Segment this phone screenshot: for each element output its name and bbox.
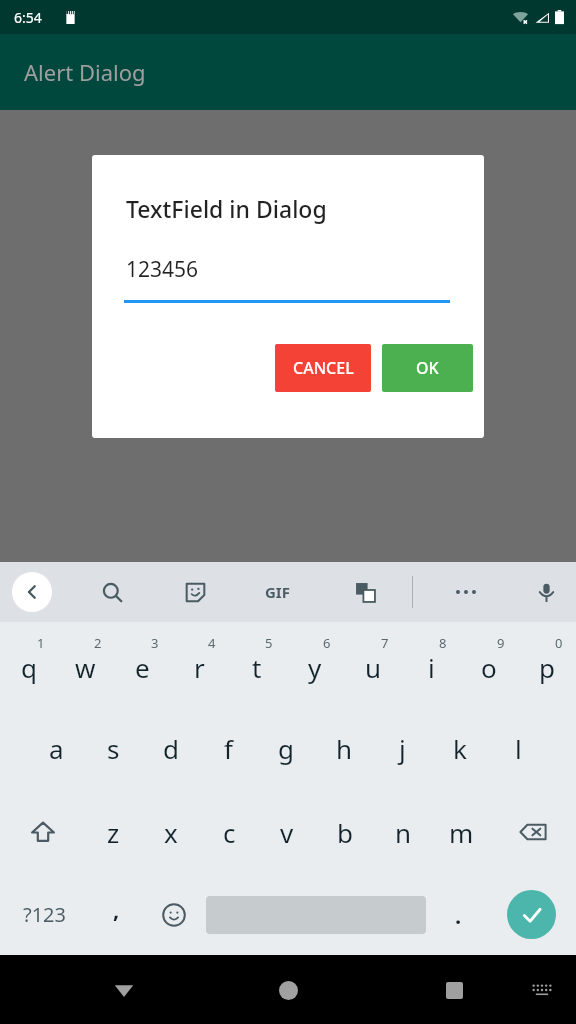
staticText: n (395, 815, 412, 850)
staticText: q (21, 650, 37, 685)
button[interactable]: f (199, 706, 257, 790)
button[interactable]: x (142, 790, 200, 874)
button[interactable] (202, 874, 430, 955)
button[interactable]: Back (100, 966, 148, 1014)
button[interactable]: Home (264, 966, 312, 1014)
button[interactable]: Voice input (526, 572, 566, 612)
staticText: 1 (37, 634, 45, 652)
staticText: o (481, 650, 497, 685)
staticText: 8 (439, 634, 447, 652)
staticText: v (280, 815, 294, 850)
staticText: c (223, 815, 236, 850)
staticText: r (194, 650, 205, 685)
button[interactable]: n (374, 790, 432, 874)
button[interactable]: k (431, 706, 489, 790)
staticText: x (164, 815, 178, 850)
staticText: 3 (151, 634, 159, 652)
staticText: a (49, 731, 64, 766)
button[interactable]: OK (382, 344, 473, 392)
button[interactable]: CANCEL (275, 344, 371, 392)
staticText: 9 (497, 634, 505, 652)
staticText: s (107, 731, 120, 766)
staticText: l (515, 731, 522, 766)
staticText: TextField in Dialog (126, 193, 327, 224)
button[interactable]: d (142, 706, 199, 790)
staticText: 5 (265, 634, 273, 652)
button[interactable]: Translate (345, 572, 385, 612)
button[interactable]: Done (487, 874, 576, 955)
staticText: z (107, 815, 120, 850)
button[interactable]: 7 (344, 622, 402, 706)
staticText: 7 (381, 634, 389, 652)
button[interactable]: m (432, 790, 490, 874)
staticText: 4 (208, 634, 216, 652)
button[interactable]: a (28, 706, 85, 790)
staticText: , (113, 894, 120, 924)
button[interactable]: 2 (57, 622, 114, 706)
button[interactable]: b (316, 790, 374, 874)
button[interactable]: Shift (0, 790, 85, 874)
staticText: g (278, 731, 294, 766)
staticText: 6:54 (14, 8, 42, 27)
button[interactable]: ?123 (0, 874, 88, 955)
button[interactable]: , (88, 874, 145, 955)
staticText: ?123 (23, 901, 66, 928)
button[interactable]: j (373, 706, 431, 790)
button[interactable]: Switch keyboard (522, 970, 562, 1010)
button[interactable]: g (257, 706, 315, 790)
staticText: w (75, 650, 96, 685)
button[interactable]: 5 (228, 622, 286, 706)
button[interactable]: z (85, 790, 142, 874)
staticText: f (224, 731, 233, 766)
button[interactable]: GIF (255, 570, 299, 614)
button[interactable]: 1 (0, 622, 57, 706)
staticText: b (337, 815, 353, 850)
button[interactable]: v (258, 790, 316, 874)
staticText: 0 (555, 634, 563, 652)
staticText: e (135, 650, 150, 685)
button[interactable]: 9 (460, 622, 518, 706)
button[interactable]: 0 (518, 622, 576, 706)
staticText: 2 (94, 634, 102, 652)
staticText: u (365, 650, 382, 685)
staticText: OK (416, 357, 439, 379)
staticText: CANCEL (293, 357, 354, 379)
button[interactable]: h (315, 706, 373, 790)
button[interactable]: Emoji (145, 874, 202, 955)
staticText: GIF (265, 582, 290, 602)
button[interactable]: 6 (286, 622, 344, 706)
staticText: 6 (323, 634, 331, 652)
button[interactable]: 4 (171, 622, 228, 706)
button[interactable]: s (85, 706, 142, 790)
button[interactable]: 8 (402, 622, 460, 706)
button[interactable]: 3 (114, 622, 171, 706)
staticText: 123456 (126, 255, 199, 284)
button[interactable]: l (489, 706, 547, 790)
staticText: i (428, 650, 435, 685)
button[interactable]: Backspace (490, 790, 576, 874)
staticText: Alert Dialog (24, 57, 146, 87)
staticText: m (449, 815, 474, 850)
button[interactable]: Search (92, 572, 132, 612)
staticText: t (252, 650, 262, 685)
staticText: k (453, 731, 467, 766)
button[interactable]: More options (446, 572, 486, 612)
staticText: j (399, 731, 406, 766)
button[interactable]: Stickers (175, 572, 215, 612)
staticText: h (336, 731, 353, 766)
button[interactable]: Back (12, 572, 52, 612)
button[interactable]: . (430, 874, 487, 955)
staticText: . (455, 900, 462, 930)
staticText: d (163, 731, 179, 766)
button[interactable]: c (200, 790, 258, 874)
button[interactable]: Recents (430, 966, 478, 1014)
staticText: p (539, 650, 555, 685)
staticText: y (308, 650, 322, 685)
